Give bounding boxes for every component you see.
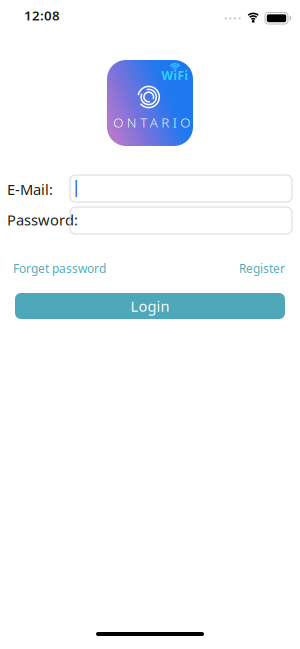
button[interactable]: Login <box>15 293 285 319</box>
button[interactable]: Register <box>239 260 285 276</box>
staticText: E-Mail: <box>7 179 53 199</box>
staticText: ONTARIO <box>113 113 190 131</box>
button[interactable]: Forget password <box>13 260 106 276</box>
staticText: 12:08 <box>24 6 60 24</box>
staticText: Forget password <box>13 260 106 276</box>
staticText: WiFi <box>161 67 188 83</box>
staticText: Register <box>239 260 285 276</box>
button[interactable]: E-Mail <box>70 175 292 202</box>
staticText: Password: <box>7 210 78 229</box>
button[interactable]: Password <box>70 207 292 234</box>
staticText: Login <box>130 296 169 316</box>
